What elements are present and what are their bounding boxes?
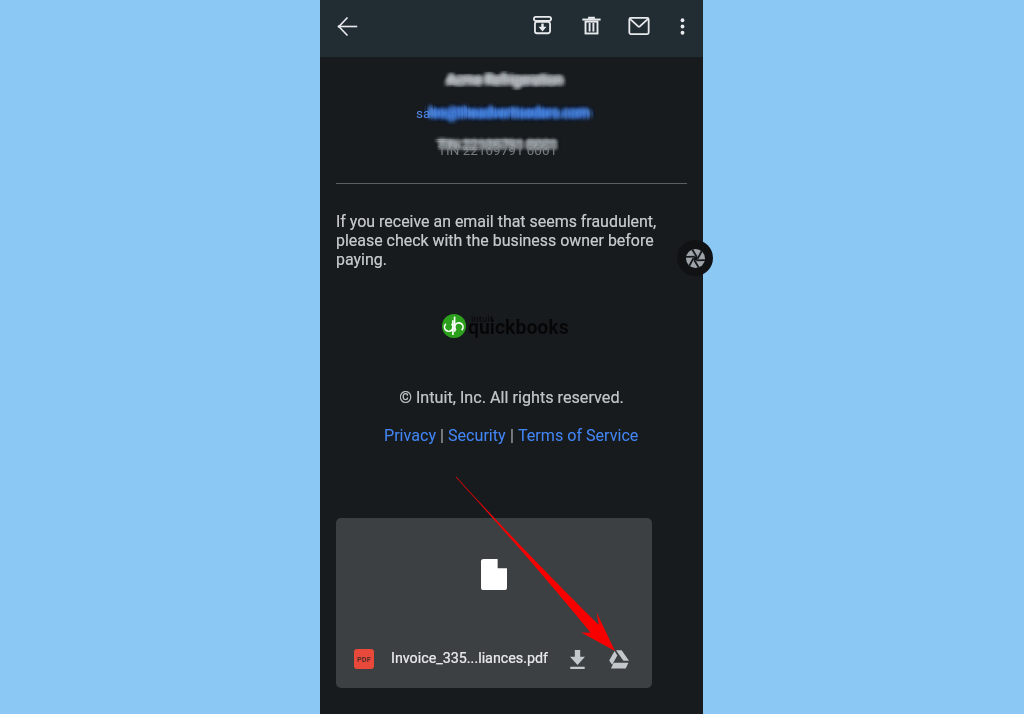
staticText: les@theadvertiseders.com: [427, 99, 588, 115]
staticText: TIN 22109791 0001: [437, 136, 557, 152]
staticText: TIN 22109791 0001: [436, 135, 556, 151]
staticText: les@theadvertiseders.com: [424, 106, 585, 122]
staticText: TIN 22109791 0001: [439, 132, 559, 148]
staticText: TIN 22109791 0001: [437, 135, 557, 151]
staticText: Acme Refrigeration: [447, 71, 563, 87]
staticText: TIN 22109791 0001: [442, 132, 562, 148]
staticText: TIN 22109791 0001: [434, 132, 554, 148]
staticText: TIN 22109791 0001: [438, 140, 558, 156]
staticText: les@theadvertiseders.com: [424, 103, 585, 119]
staticText: Acme Refrigeration: [445, 73, 561, 89]
staticText: TIN 22109791 0001: [440, 132, 560, 148]
staticText: Acme Refrigeration: [443, 68, 559, 84]
staticText: Acme Refrigeration: [454, 69, 570, 85]
staticText: les@theadvertiseders.com: [426, 105, 587, 121]
staticText: Acme Refrigeration: [448, 74, 564, 90]
staticText: TIN 22109791 0001: [442, 135, 562, 151]
staticText: TIN 22109791 0001: [439, 134, 559, 150]
button[interactable]: Save to Drive: [604, 644, 634, 674]
staticText: TIN 22109791 0001: [438, 135, 558, 151]
staticText: Acme Refrigeration: [448, 73, 564, 89]
staticText: Acme Refrigeration: [450, 75, 566, 91]
button[interactable]: PDF: [336, 518, 652, 688]
staticText: les@theadvertiseders.com: [426, 108, 587, 124]
staticText: les@theadvertiseders.com: [429, 107, 590, 123]
staticText: Acme Refrigeration: [449, 75, 565, 91]
staticText: TIN 22109791 0001: [435, 137, 555, 153]
staticText: TIN 22109791 0001: [433, 135, 553, 151]
staticText: les@theadvertiseders.com: [427, 107, 588, 123]
staticText: les@theadvertiseders.com: [434, 103, 595, 119]
staticText: Acme Refrigeration: [444, 72, 560, 88]
staticText: TIN 22109791 0001: [444, 136, 564, 152]
staticText: Acme Refrigeration: [443, 74, 559, 90]
staticText: Acme Refrigeration: [445, 74, 561, 90]
staticText: Acme Refrigeration: [450, 72, 566, 88]
staticText: TIN 22109791 0001: [442, 137, 562, 153]
staticText: les@theadvertiseders.com: [430, 107, 591, 123]
staticText: Acme Refrigeration: [441, 73, 557, 89]
staticText: TIN 22109791 0001: [433, 135, 553, 151]
staticText: les@theadvertiseders.com: [433, 102, 594, 118]
staticText: TIN 22109791 0001: [437, 138, 557, 154]
staticText: Acme Refrigeration: [449, 74, 565, 90]
staticText: TIN 22109791 0001: [436, 135, 556, 151]
staticText: TIN 22109791 0001: [442, 139, 562, 155]
staticText: TIN 22109791 0001: [442, 136, 562, 152]
staticText: Invoice_335...liances.pdf: [391, 650, 549, 667]
staticText: les@theadvertiseders.com: [426, 102, 587, 118]
button[interactable]: Terms of Service: [518, 426, 639, 445]
staticText: les@theadvertiseders.com: [430, 98, 591, 114]
staticText: les@theadvertiseders.com: [433, 105, 594, 121]
staticText: Acme Refrigeration: [447, 68, 563, 84]
staticText: TIN 22109791 0001: [441, 135, 561, 151]
staticText: Acme Refrigeration: [442, 68, 558, 84]
staticText: Acme Refrigeration: [449, 68, 565, 84]
staticText: Acme Refrigeration: [450, 71, 566, 87]
staticText: les@theadvertiseders.com: [423, 99, 584, 115]
staticText: Acme Refrigeration: [446, 69, 562, 85]
staticText: Acme Refrigeration: [444, 69, 560, 85]
staticText: TIN 22109791 0001: [439, 136, 559, 152]
button[interactable]: Delete: [569, 3, 613, 47]
staticText: les@theadvertiseders.com: [424, 99, 585, 115]
button[interactable]: Privacy: [384, 426, 436, 445]
button[interactable]: More options: [660, 4, 704, 48]
staticText: Acme Refrigeration: [442, 74, 558, 90]
staticText: Acme Refrigeration: [448, 74, 564, 90]
staticText: les@theadvertiseders.com: [423, 105, 584, 121]
button[interactable]: Security: [448, 426, 506, 445]
staticText: les@theadvertiseders.com: [423, 103, 584, 119]
staticText: TIN 22109791 0001: [444, 137, 564, 153]
button[interactable]: Mark as unread: [617, 4, 661, 48]
staticText: Acme Refrigeration: [445, 67, 561, 83]
staticText: TIN 22109791 0001: [434, 137, 554, 153]
staticText: TIN 22109791 0001: [441, 140, 561, 156]
staticText: les@theadvertiseders.com: [427, 98, 588, 114]
staticText: les@theadvertiseders.com: [422, 104, 583, 120]
staticText: Acme Refrigeration: [452, 74, 568, 90]
staticText: Acme Refrigeration: [446, 75, 562, 91]
staticText: Acme Refrigeration: [450, 74, 566, 90]
staticText: TIN 22109791 0001: [442, 140, 562, 156]
staticText: TIN 22109791 0001: [438, 137, 558, 153]
staticText: Acme Refrigeration: [454, 73, 570, 89]
staticText: Acme Refrigeration: [454, 68, 570, 84]
staticText: les@theadvertiseders.com: [435, 100, 596, 116]
staticText: Acme Refrigeration: [444, 67, 560, 83]
button[interactable]: Archive: [520, 3, 564, 47]
button[interactable]: Download: [562, 644, 592, 674]
staticText: les@theadvertiseders.com: [429, 98, 590, 114]
staticText: les@theadvertiseders.com: [434, 107, 595, 123]
staticText: les@theadvertiseders.com: [426, 106, 587, 122]
staticText: TIN 22109791 0001: [435, 138, 555, 154]
staticText: TIN 22109791 0001: [433, 132, 553, 148]
button[interactable]: Back: [325, 4, 369, 48]
staticText: TIN 22109791 0001: [435, 136, 555, 152]
staticText: TIN 22109791 0001: [438, 138, 558, 154]
staticText: Acme Refrigeration: [451, 68, 567, 84]
staticText: Acme Refrigeration: [452, 71, 568, 87]
staticText: les@theadvertiseders.com: [423, 102, 584, 118]
button[interactable]: Screen record: [677, 240, 713, 276]
staticText: Acme Refrigeration: [449, 69, 565, 85]
